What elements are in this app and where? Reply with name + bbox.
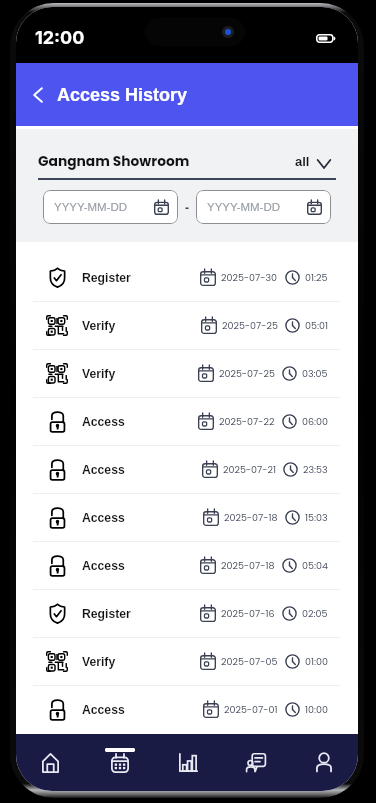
staticText: 2025-07-01 — [224, 703, 278, 716]
staticText: 10:00 — [305, 703, 328, 716]
staticText: 06:00 — [302, 415, 328, 428]
staticText: 2025-07-22 — [219, 415, 275, 428]
button[interactable]: YYYY-MM-DD — [196, 190, 331, 224]
staticText: all — [295, 154, 310, 169]
button[interactable]: Calendar — [85, 734, 154, 791]
staticText: YYYY-MM-DD — [207, 201, 281, 214]
button[interactable]: Verify — [16, 638, 358, 685]
button[interactable]: Access — [16, 446, 358, 493]
staticText: 2025-07-18 — [221, 559, 275, 572]
staticText: 2025-07-16 — [221, 607, 275, 620]
staticText: Register — [82, 271, 131, 285]
button[interactable]: Gangnam Showroom — [38, 152, 331, 171]
staticText: Access History — [57, 85, 188, 105]
staticText: 2025-07-21 — [223, 463, 276, 476]
staticText: 03:05 — [302, 367, 328, 380]
staticText: Verify — [82, 319, 116, 333]
button[interactable]: Access — [16, 398, 358, 445]
button[interactable]: Profile — [290, 734, 358, 791]
staticText: 12:00 — [35, 27, 85, 49]
staticText: Access — [82, 511, 125, 525]
staticText: 2025-07-05 — [221, 655, 278, 668]
button[interactable]: Access — [16, 686, 358, 733]
staticText: 15:03 — [305, 511, 328, 524]
staticText: Gangnam Showroom — [38, 152, 190, 171]
staticText: Verify — [82, 655, 116, 669]
button[interactable]: Register — [16, 590, 358, 637]
staticText: 2025-07-30 — [221, 271, 278, 284]
button[interactable]: Access — [16, 542, 358, 589]
staticText: 02:05 — [302, 607, 328, 620]
button[interactable]: Verify — [16, 302, 358, 349]
staticText: Access — [82, 415, 125, 429]
button[interactable]: Messages — [222, 734, 290, 791]
staticText: Access — [82, 703, 125, 717]
button[interactable]: Home — [16, 734, 85, 791]
staticText: YYYY-MM-DD — [54, 201, 128, 214]
staticText: 01:25 — [305, 271, 328, 284]
button[interactable]: Access — [16, 494, 358, 541]
button[interactable]: Statistics — [154, 734, 222, 791]
staticText: Verify — [82, 367, 116, 381]
staticText: 2025-07-25 — [222, 319, 278, 332]
button[interactable]: YYYY-MM-DD — [43, 190, 178, 224]
staticText: Access — [82, 463, 125, 477]
staticText: 01:00 — [305, 655, 328, 668]
staticText: Access — [82, 559, 125, 573]
staticText: 05:04 — [302, 559, 328, 572]
button[interactable]: Register — [16, 254, 358, 301]
staticText: 23:53 — [303, 463, 328, 476]
staticText: 2025-07-18 — [224, 511, 278, 524]
staticText: 2025-07-25 — [219, 367, 275, 380]
button[interactable]: Verify — [16, 350, 358, 397]
staticText: 05:01 — [305, 319, 328, 332]
staticText: Register — [82, 607, 131, 621]
button[interactable]: Back — [23, 80, 53, 110]
staticText: - — [185, 201, 189, 214]
